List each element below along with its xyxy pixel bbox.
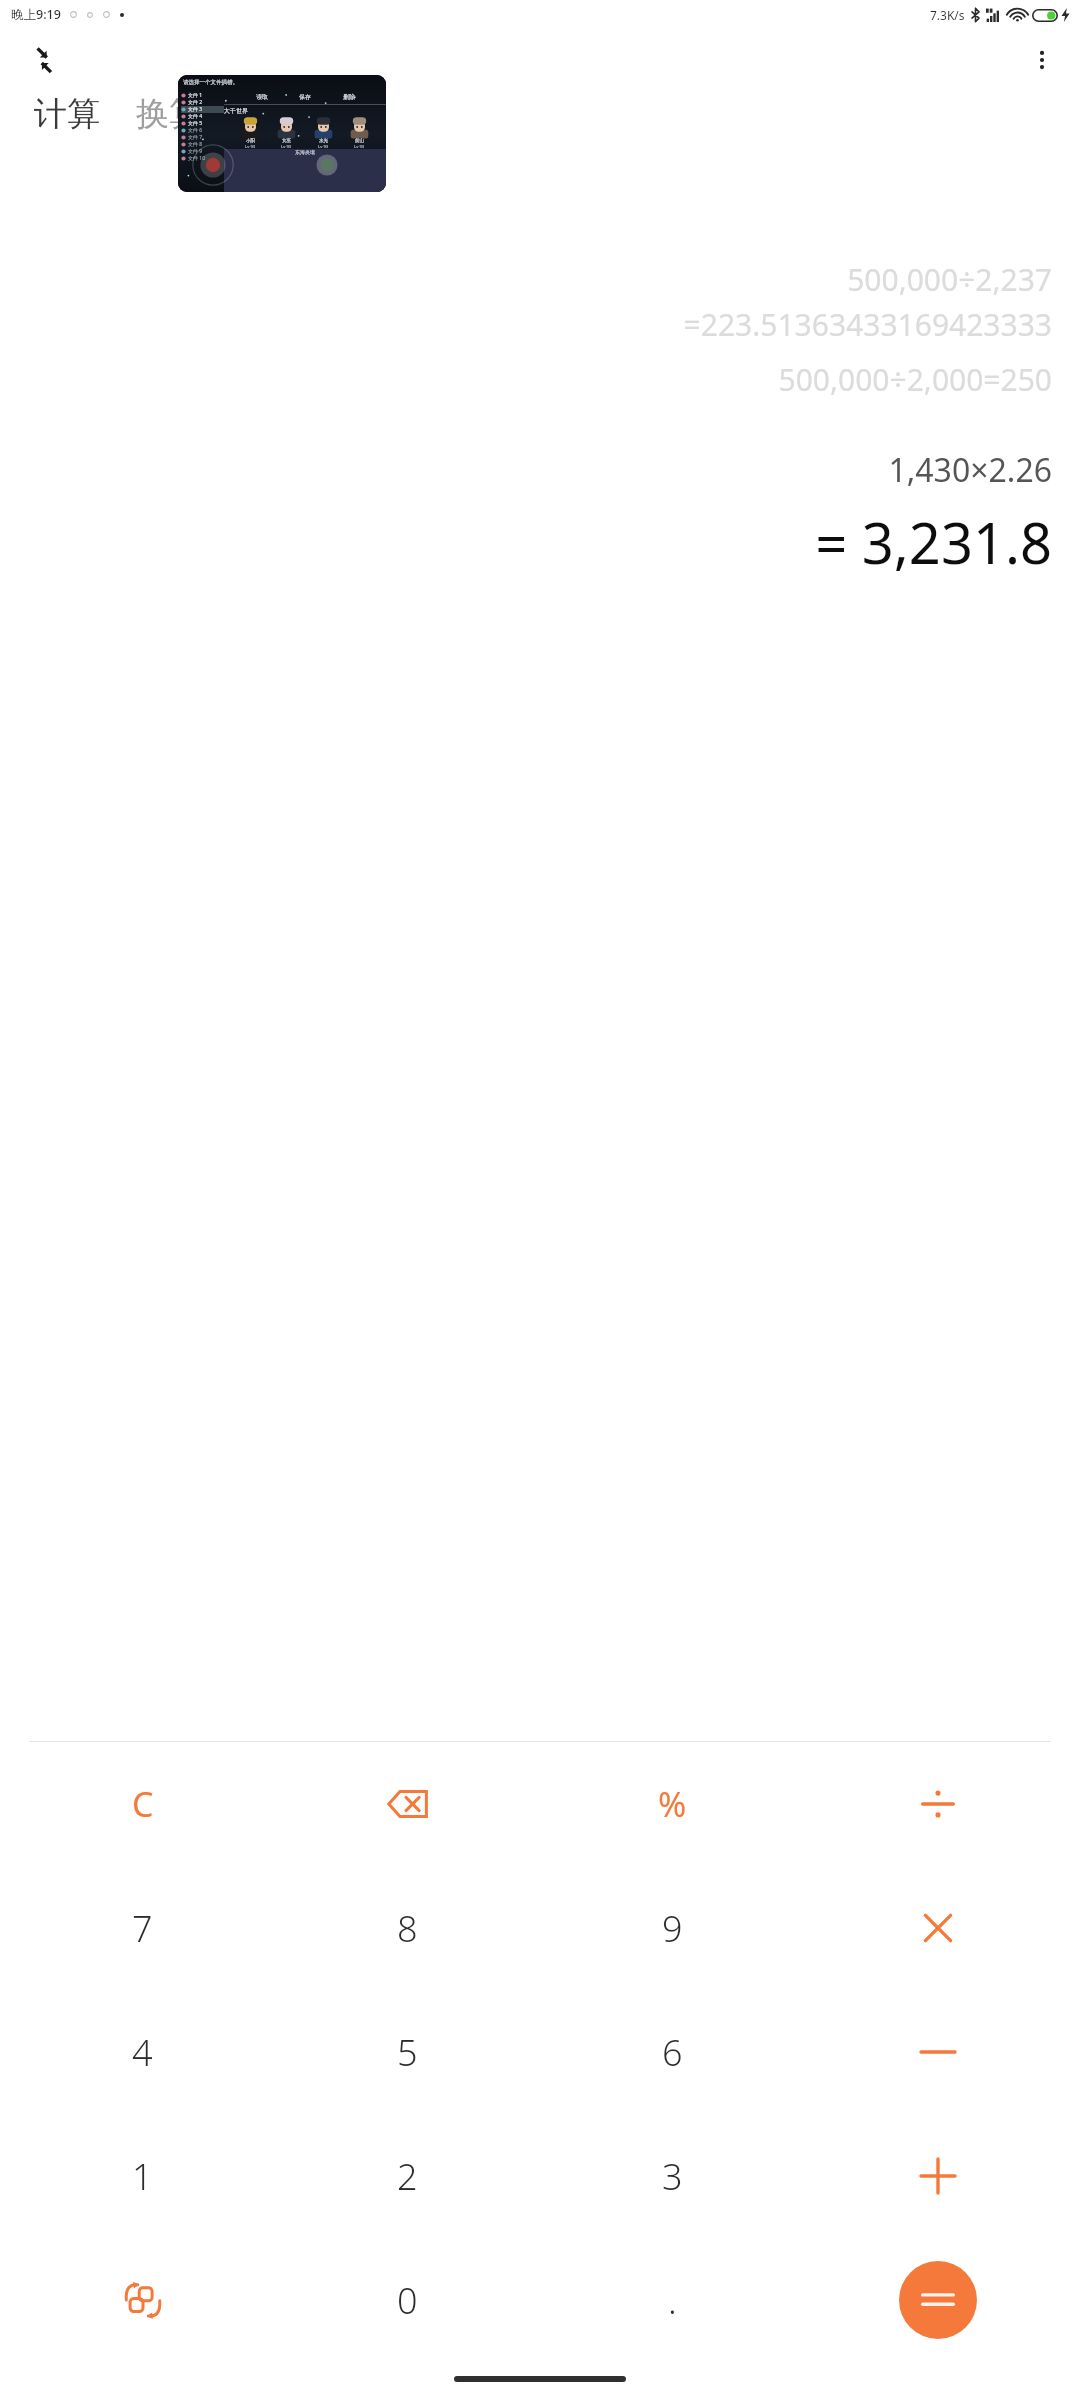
button[interactable]: 请选择一个文件插槽。: [178, 75, 386, 192]
other: Multiply: [916, 1906, 960, 1950]
staticText: 6: [662, 2028, 683, 2077]
staticText: Lv 93: [281, 144, 292, 149]
button[interactable]: C: [10, 1742, 275, 1866]
staticText: 换算: [136, 93, 202, 135]
button[interactable]: .: [540, 2238, 805, 2362]
button[interactable]: Divide: [805, 1742, 1070, 1866]
staticText: 8: [397, 1904, 418, 1953]
staticText: 7.3K/s: [930, 7, 965, 23]
staticText: 文件 5: [188, 120, 203, 127]
staticText: 晚上9:19: [11, 6, 61, 23]
staticText: 文件 6: [188, 127, 203, 134]
staticText: 5: [397, 2028, 418, 2077]
button[interactable]: 1: [10, 2114, 275, 2238]
button[interactable]: 8: [275, 1866, 540, 1990]
button[interactable]: 程序员: [232, 91, 343, 137]
staticText: 请选择一个文件插槽。: [183, 79, 238, 86]
staticText: 程序员: [238, 93, 337, 135]
other: Minus: [916, 2030, 960, 2074]
other: Backspace: [386, 1782, 430, 1826]
staticText: C: [132, 1781, 154, 1827]
staticText: 2: [397, 2152, 418, 2201]
staticText: 大千世界: [224, 107, 386, 115]
staticText: 文件 8: [188, 141, 203, 148]
staticText: Lv 93: [245, 144, 256, 149]
button[interactable]: 2: [275, 2114, 540, 2238]
button[interactable]: Minus: [805, 1990, 1070, 2114]
button[interactable]: 7: [10, 1866, 275, 1990]
button[interactable]: Multiply: [805, 1866, 1070, 1990]
button[interactable]: Backspace: [275, 1742, 540, 1866]
staticText: 小阳: [246, 138, 256, 144]
button[interactable]: 换算: [130, 91, 208, 137]
staticText: 文件 3: [188, 106, 203, 113]
staticText: Lv 93: [318, 144, 329, 149]
staticText: 文件 9: [188, 148, 203, 155]
button[interactable]: Collapse: [20, 36, 68, 84]
staticText: 9: [662, 1904, 683, 1953]
staticText: 文件 2: [188, 99, 203, 106]
staticText: 读取: [256, 93, 268, 101]
staticText: 删除: [343, 93, 355, 101]
staticText: Lv 93: [354, 144, 365, 149]
button[interactable]: %: [540, 1742, 805, 1866]
other: Divide: [916, 1782, 960, 1826]
staticText: 计算: [34, 93, 100, 135]
button[interactable]: 6: [540, 1990, 805, 2114]
other: Plus: [916, 2154, 960, 2198]
staticText: 500,000÷2,237: [0, 259, 1052, 300]
staticText: 1: [132, 2152, 153, 2201]
button[interactable]: Unit converter: [10, 2238, 275, 2362]
staticText: 4: [132, 2028, 153, 2077]
staticText: 文件 4: [188, 113, 203, 120]
staticText: 文件 1: [188, 92, 203, 99]
staticText: 文件 10: [188, 155, 206, 162]
staticText: %: [658, 1781, 687, 1827]
staticText: 保存: [299, 93, 311, 101]
staticText: =223.51363433169423333: [0, 304, 1052, 345]
staticText: 东海炎壤: [295, 149, 315, 155]
staticText: 文件 7: [188, 134, 203, 141]
staticText: 前山: [355, 138, 365, 144]
button[interactable]: Equals: [899, 2261, 977, 2339]
staticText: 0: [397, 2276, 418, 2325]
staticText: 3: [662, 2152, 683, 2201]
button[interactable]: 计算: [28, 91, 106, 137]
staticText: 水光: [319, 138, 329, 144]
staticText: .: [668, 2276, 677, 2325]
button[interactable]: 3: [540, 2114, 805, 2238]
button[interactable]: More options: [1018, 36, 1066, 84]
button[interactable]: 0: [275, 2238, 540, 2362]
staticText: 7: [132, 1904, 153, 1953]
staticText: 1,430×2.26: [0, 448, 1052, 492]
button[interactable]: 4: [10, 1990, 275, 2114]
other: Unit converter: [119, 2276, 167, 2324]
staticText: = 3,231.8: [0, 504, 1052, 580]
button[interactable]: 9: [540, 1866, 805, 1990]
button[interactable]: 5: [275, 1990, 540, 2114]
staticText: 500,000÷2,000=250: [0, 359, 1052, 400]
staticText: 女巫: [282, 138, 292, 144]
button[interactable]: Plus: [805, 2114, 1070, 2238]
